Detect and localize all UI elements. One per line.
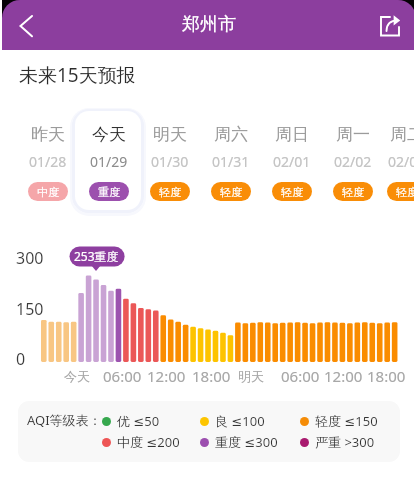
staticText: 18:00 bbox=[367, 366, 406, 386]
staticText: 轻度 ≤150 bbox=[315, 412, 378, 430]
staticText: 明天 bbox=[238, 368, 264, 384]
staticText: 昨天 bbox=[31, 124, 65, 145]
staticText: 重度 bbox=[98, 185, 120, 199]
staticText: 周日 bbox=[275, 124, 309, 145]
staticText: 300 bbox=[16, 247, 44, 269]
staticText: 轻度 bbox=[342, 185, 364, 199]
staticText: 郑州市 bbox=[182, 13, 236, 36]
staticText: 01/29 bbox=[90, 152, 128, 171]
button[interactable]: 周一 bbox=[322, 111, 383, 210]
staticText: 01/30 bbox=[151, 152, 189, 171]
button[interactable]: 明天 bbox=[139, 111, 200, 210]
staticText: 周六 bbox=[214, 124, 248, 145]
staticText: 12:00 bbox=[324, 366, 363, 386]
button[interactable]: 周日 bbox=[261, 111, 322, 210]
staticText: 今天 bbox=[92, 124, 126, 145]
staticText: 今天 bbox=[64, 368, 90, 384]
staticText: 253重度 bbox=[74, 248, 119, 264]
staticText: 02/03 bbox=[388, 152, 414, 171]
button[interactable]: 昨天 bbox=[17, 111, 78, 210]
staticText: 12:00 bbox=[147, 366, 186, 386]
staticText: 严重 >300 bbox=[315, 433, 375, 451]
staticText: 优 ≤50 bbox=[117, 412, 160, 430]
staticText: 中度 ≤200 bbox=[117, 433, 180, 451]
staticText: AQI等级表： bbox=[27, 411, 102, 429]
staticText: 06:00 bbox=[281, 366, 320, 386]
staticText: 良 ≤100 bbox=[215, 412, 265, 430]
button[interactable]: Share bbox=[375, 12, 403, 40]
staticText: 01/31 bbox=[212, 152, 250, 171]
staticText: 01/28 bbox=[29, 152, 67, 171]
staticText: 重度 ≤300 bbox=[215, 433, 278, 451]
staticText: 150 bbox=[16, 298, 44, 320]
staticText: 0 bbox=[16, 348, 26, 370]
staticText: 轻度 bbox=[159, 185, 181, 199]
button[interactable]: 周六 bbox=[200, 111, 261, 210]
staticText: 周一 bbox=[336, 124, 370, 145]
button[interactable]: 周二 bbox=[383, 111, 414, 210]
staticText: 轻度 bbox=[281, 185, 303, 199]
staticText: 02/02 bbox=[334, 152, 372, 171]
button[interactable]: Back bbox=[13, 12, 41, 40]
staticText: 02/01 bbox=[273, 152, 311, 171]
button[interactable]: 今天 bbox=[78, 111, 139, 210]
staticText: 中度 bbox=[37, 185, 59, 199]
staticText: 轻度 bbox=[220, 185, 242, 199]
staticText: 周二 bbox=[390, 124, 414, 145]
staticText: 06:00 bbox=[103, 366, 142, 386]
staticText: 明天 bbox=[153, 124, 187, 145]
staticText: 轻度 bbox=[396, 185, 414, 199]
staticText: 18:00 bbox=[192, 366, 231, 386]
staticText: 未来15天预报 bbox=[19, 62, 136, 88]
